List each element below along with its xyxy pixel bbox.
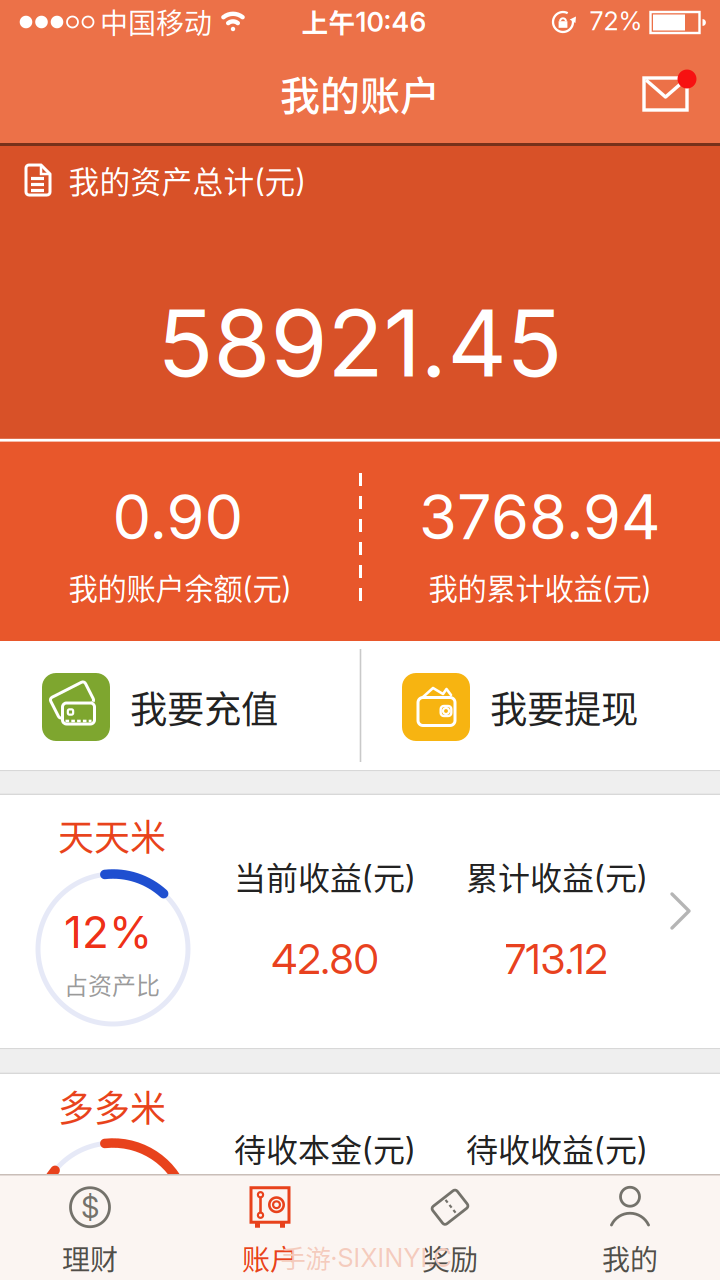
button[interactable]: 我要提现 bbox=[360, 645, 716, 769]
staticText: 42.80 bbox=[271, 935, 378, 983]
staticText: 713.12 bbox=[504, 935, 607, 983]
staticText: 72% bbox=[589, 6, 642, 36]
staticText: 奖励 bbox=[422, 1238, 478, 1278]
staticText: 我要提现 bbox=[490, 681, 638, 733]
button[interactable]: 账户 bbox=[182, 1181, 358, 1280]
staticText: 3768.94 bbox=[419, 481, 661, 553]
staticText: 上午10:46 bbox=[301, 2, 426, 40]
staticText: 我的 bbox=[602, 1238, 658, 1278]
staticText: 理财 bbox=[62, 1238, 118, 1278]
staticText: 待收本金(元) bbox=[234, 1125, 416, 1171]
staticText: 天天米 bbox=[58, 810, 166, 860]
button[interactable]: 我的 bbox=[542, 1181, 718, 1280]
button[interactable]: 天天米 bbox=[0, 795, 720, 1048]
staticText: 0.90 bbox=[112, 481, 243, 553]
staticText: 我的账户余额(元) bbox=[68, 566, 291, 608]
button[interactable]: 消息 bbox=[642, 71, 700, 115]
staticText: 58921.45 bbox=[157, 289, 562, 397]
staticText: 账户 bbox=[242, 1238, 298, 1278]
staticText: 我要充值 bbox=[130, 681, 278, 733]
button[interactable]: 我要充值 bbox=[0, 645, 356, 769]
staticText: 我的资产总计(元) bbox=[68, 158, 305, 202]
staticText: 12% bbox=[64, 906, 152, 958]
staticText: 多多米 bbox=[58, 1081, 166, 1131]
staticText: 我的累计收益(元) bbox=[428, 566, 651, 608]
staticText: $ bbox=[81, 1190, 99, 1224]
staticText: 中国移动 bbox=[100, 2, 212, 41]
staticText: 手游·SIXINYI.C bbox=[280, 1239, 451, 1275]
staticText: 累计收益(元) bbox=[466, 853, 648, 899]
button[interactable]: 奖励 bbox=[362, 1181, 538, 1280]
staticText: 占资产比 bbox=[64, 967, 160, 1001]
button[interactable]: $ bbox=[2, 1181, 178, 1280]
staticText: 待收收益(元) bbox=[466, 1125, 648, 1171]
staticText: 我的账户 bbox=[280, 65, 440, 121]
staticText: 当前收益(元) bbox=[234, 853, 416, 899]
button[interactable]: 多多米 bbox=[0, 1074, 720, 1175]
